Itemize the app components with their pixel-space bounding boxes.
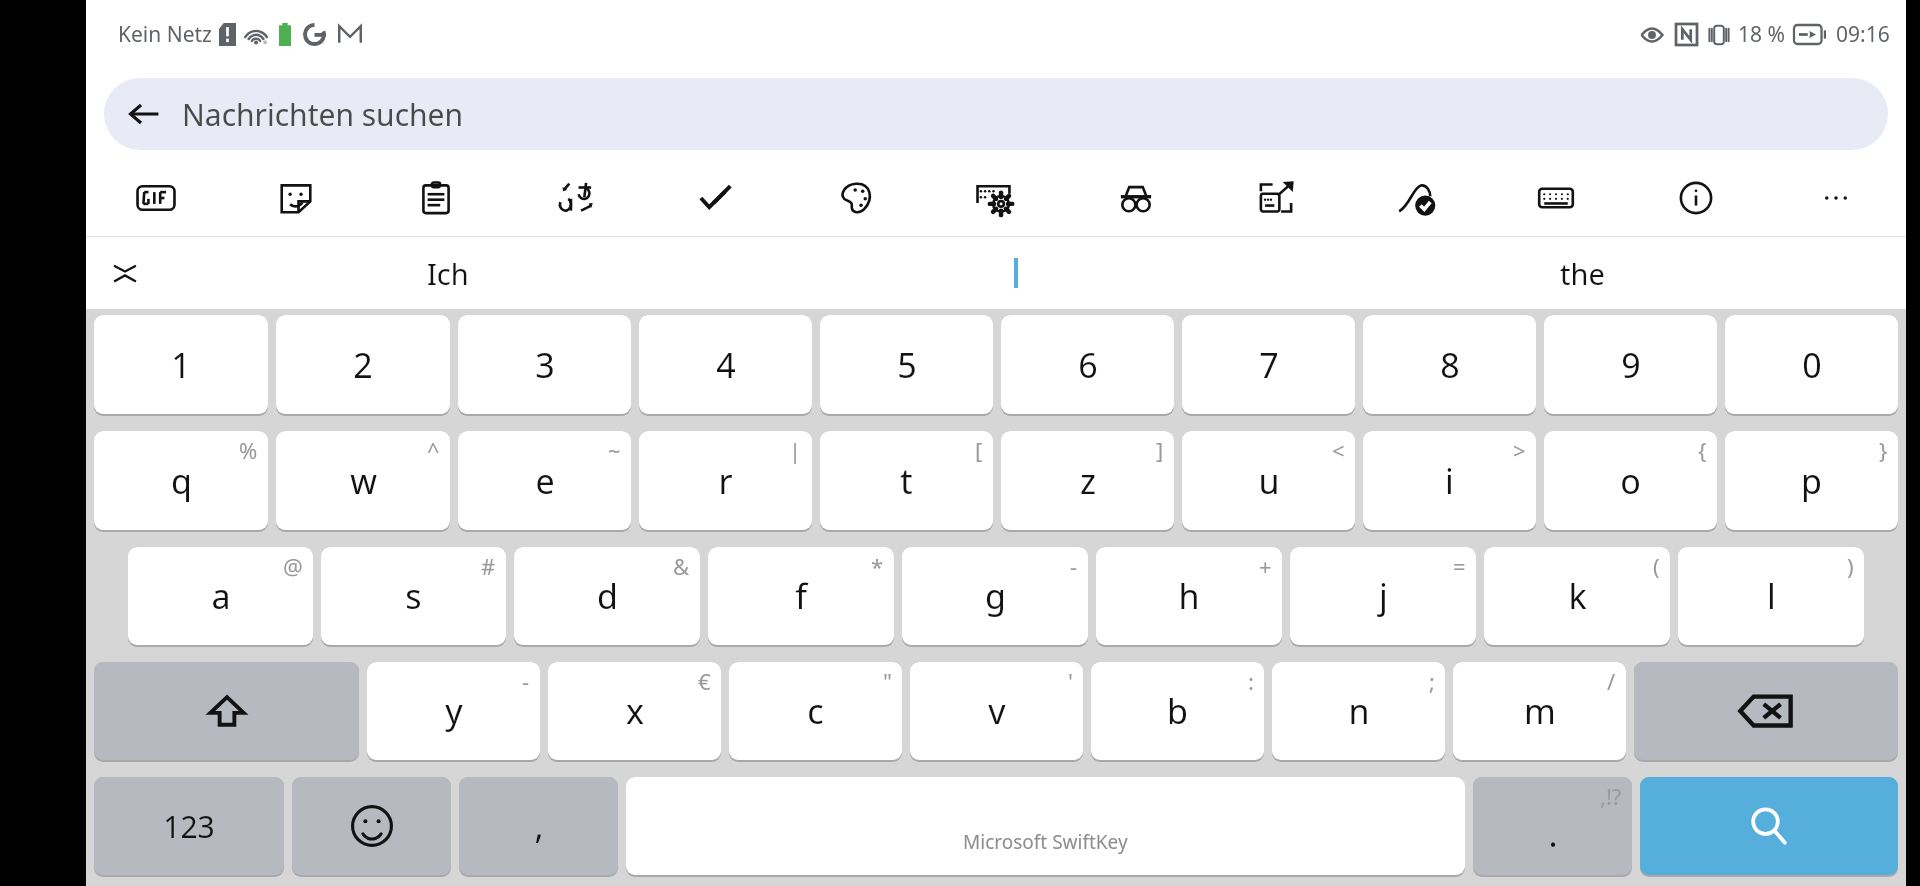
button[interactable]: Zurück [104,78,1888,150]
button[interactable]: Sticker [226,160,366,236]
button[interactable]: GIF [86,160,226,236]
button[interactable]: 9 [1544,315,1717,414]
button[interactable]: 4 [639,315,812,414]
button[interactable]: w [276,431,450,530]
button[interactable] [732,237,1299,309]
button[interactable]: t [820,431,993,530]
button[interactable]: . [1473,777,1632,875]
button[interactable]: z [1001,431,1174,530]
staticText: ] [1156,435,1164,465]
button[interactable]: Inkognito [1066,160,1206,236]
staticText: g [985,573,1006,619]
staticText: & [673,551,690,581]
staticText: m [1524,688,1556,734]
button[interactable]: Emoji [292,777,451,875]
button[interactable]: the [1299,237,1866,309]
button[interactable]: 3 [458,315,631,414]
button[interactable]: h [1096,547,1282,645]
button[interactable]: Ich [164,237,732,309]
button[interactable]: Wischen [1346,160,1486,236]
staticText: + [1259,551,1272,581]
button[interactable]: , [459,777,618,875]
button[interactable]: j [1290,547,1476,645]
staticText: h [1178,573,1200,619]
button[interactable]: l [1678,547,1864,645]
button[interactable]: i [1363,431,1536,530]
staticText: # [481,551,496,581]
button[interactable]: Löschen [1634,662,1898,760]
button[interactable]: s [321,547,506,645]
button[interactable]: d [514,547,700,645]
button[interactable]: e [458,431,631,530]
button[interactable]: y [367,662,540,760]
staticText: ~ [608,435,621,465]
button[interactable]: Zurück [118,88,170,140]
staticText: k [1568,573,1587,619]
button[interactable]: f [708,547,894,645]
button[interactable]: Korrektur [646,160,786,236]
button[interactable]: Tastatur [1486,160,1626,236]
staticText: ; [1429,666,1435,696]
staticText: % [239,435,258,465]
staticText: j [1379,573,1388,619]
staticText: 0 [1802,342,1822,388]
staticText: - [522,666,530,696]
button[interactable]: Zwischenablage [366,160,506,236]
staticText: } [1879,435,1888,465]
button[interactable]: 0 [1725,315,1898,414]
staticText: / [1607,666,1616,696]
button[interactable]: Umschalt [94,662,359,760]
staticText: " [883,666,892,696]
button[interactable]: Einstellungen [926,160,1066,236]
staticText: 6 [1078,342,1098,388]
button[interactable]: 6 [1001,315,1174,414]
staticText: 123 [163,806,215,847]
staticText: 7 [1259,342,1279,388]
button[interactable]: 123 [94,777,284,875]
staticText: 3 [535,342,555,388]
button[interactable]: Designs [786,160,926,236]
button[interactable]: Suchen [1640,777,1898,875]
button[interactable]: n [1272,662,1445,760]
button[interactable]: o [1544,431,1717,530]
button[interactable]: m [1453,662,1626,760]
staticText: q [171,458,192,504]
staticText: : [1248,666,1254,696]
button[interactable]: p [1725,431,1898,530]
button[interactable]: 1 [94,315,268,414]
button[interactable]: 7 [1182,315,1355,414]
button[interactable]: k [1484,547,1670,645]
button[interactable]: Info [1626,160,1766,236]
staticText: l [1767,573,1776,619]
button[interactable]: x [548,662,721,760]
button[interactable]: 5 [820,315,993,414]
button[interactable]: r [639,431,812,530]
button[interactable]: 8 [1363,315,1536,414]
button[interactable]: Übersetzen [506,160,646,236]
staticText: n [1348,688,1370,734]
staticText: d [597,573,618,619]
button[interactable]: v [910,662,1083,760]
staticText: r [718,458,733,504]
button[interactable]: Mehr [1766,160,1906,236]
staticText: b [1167,688,1188,734]
button[interactable]: g [902,547,1088,645]
staticText: c [807,688,824,734]
button[interactable]: c [729,662,902,760]
staticText: ' [1068,666,1073,696]
button[interactable]: Leerzeichen [626,777,1465,875]
button[interactable]: u [1182,431,1355,530]
staticText: ) [1847,551,1854,581]
button[interactable]: Größe ändern [1206,160,1346,236]
button[interactable]: 2 [276,315,450,414]
button[interactable]: q [94,431,268,530]
staticText: . [1548,811,1558,857]
staticText: | [789,435,802,465]
button[interactable]: a [128,547,313,645]
button[interactable]: b [1091,662,1264,760]
staticText: Kein Netz [118,20,212,49]
staticText: i [1445,458,1454,504]
button[interactable]: Vorschläge erweitern [86,237,164,309]
staticText: 5 [897,342,917,388]
staticText: e [535,458,555,504]
